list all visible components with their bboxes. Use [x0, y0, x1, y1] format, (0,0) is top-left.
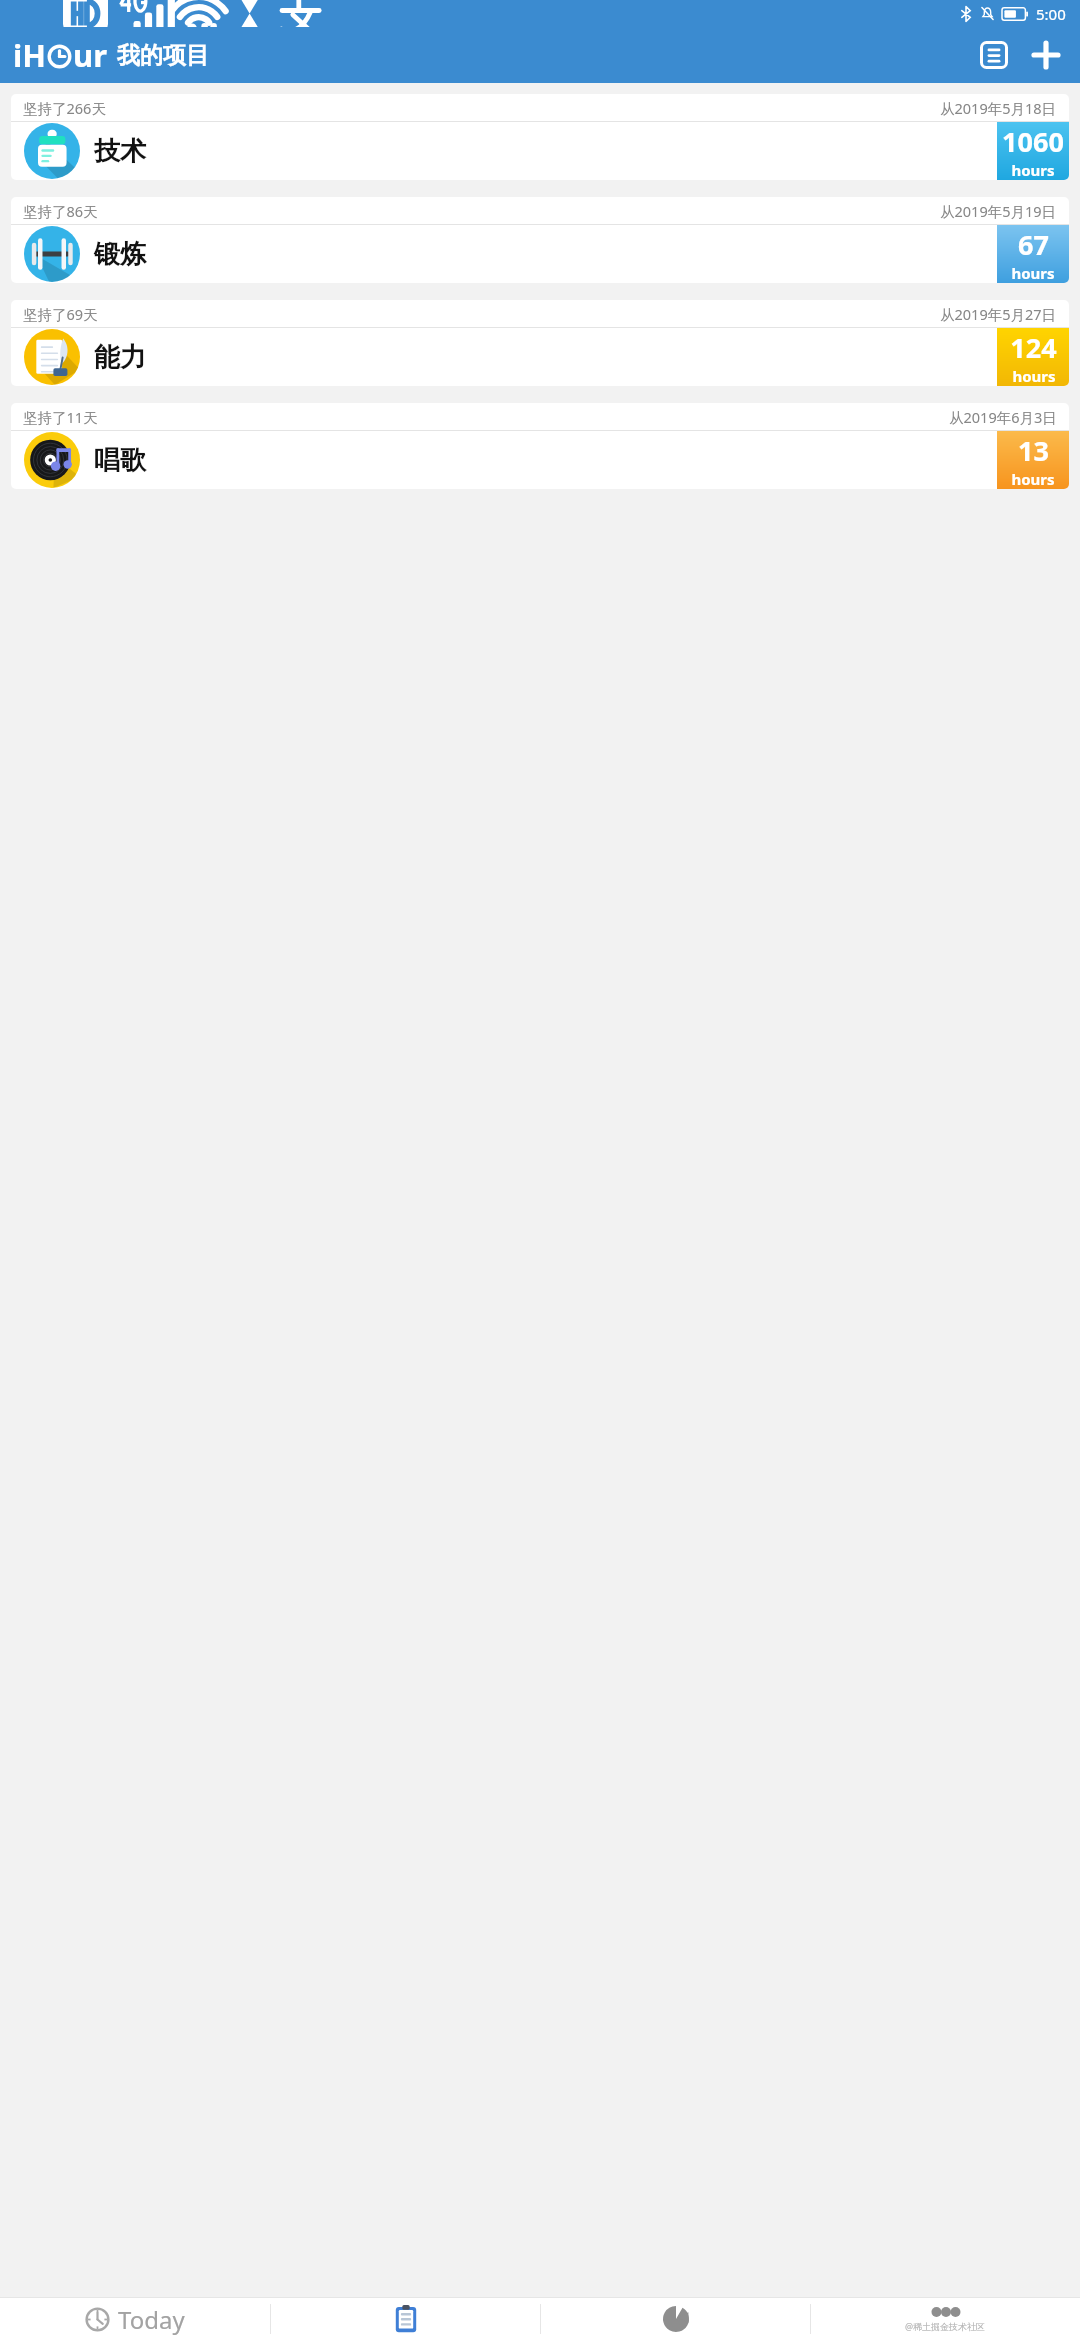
- staticText: 坚持了266天: [23, 98, 106, 118]
- staticText: 从2019年5月19日: [940, 201, 1057, 221]
- staticText: @稀土掘金技术社区: [905, 2320, 986, 2332]
- staticText: 我的项目: [117, 41, 209, 70]
- staticText: 坚持了86天: [23, 201, 98, 221]
- button[interactable]: 坚持了86天: [11, 197, 1069, 283]
- staticText: 13: [1018, 432, 1049, 469]
- staticText: 从2019年6月3日: [949, 407, 1057, 427]
- staticText: 1060: [1002, 123, 1064, 160]
- staticText: 坚持了11天: [23, 407, 98, 427]
- staticText: 67: [1018, 226, 1049, 263]
- staticText: 124: [1010, 329, 1057, 366]
- staticText: hours: [1011, 160, 1055, 180]
- staticText: 能力: [94, 341, 146, 374]
- button[interactable]: Today: [0, 2298, 270, 2340]
- staticText: 5:00: [1036, 4, 1066, 24]
- staticText: hours: [1011, 469, 1055, 489]
- button[interactable]: More: [811, 2298, 1080, 2340]
- staticText: hours: [1012, 366, 1056, 386]
- staticText: iH: [13, 34, 46, 76]
- button[interactable]: 坚持了69天: [11, 300, 1069, 386]
- staticText: hours: [1011, 263, 1055, 283]
- staticText: 从2019年5月27日: [940, 304, 1057, 324]
- button[interactable]: Statistics: [541, 2298, 810, 2340]
- staticText: ur: [73, 34, 108, 76]
- button[interactable]: 坚持了11天: [11, 403, 1069, 489]
- staticText: 坚持了69天: [23, 304, 98, 324]
- staticText: Today: [118, 2303, 185, 2336]
- staticText: 技术: [94, 135, 146, 168]
- button[interactable]: List view: [970, 31, 1018, 79]
- staticText: 唱歌: [94, 444, 146, 477]
- button[interactable]: Projects: [271, 2298, 540, 2340]
- staticText: 锻炼: [94, 238, 146, 271]
- button[interactable]: Add project: [1022, 31, 1070, 79]
- button[interactable]: 坚持了266天: [11, 94, 1069, 180]
- staticText: 从2019年5月18日: [940, 98, 1057, 118]
